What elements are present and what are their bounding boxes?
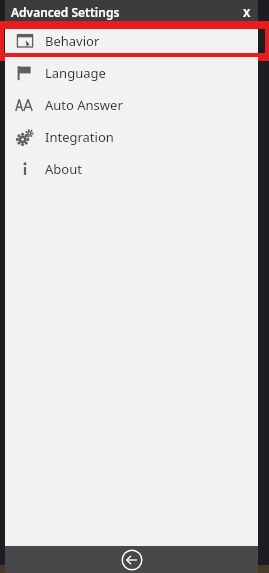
- staticText: Language: [45, 64, 106, 82]
- button[interactable]: Behavior: [5, 25, 258, 57]
- button[interactable]: Integration: [5, 121, 258, 153]
- staticText: X: [243, 5, 251, 20]
- button[interactable]: About: [5, 153, 258, 185]
- button[interactable]: Close: [236, 1, 258, 23]
- staticText: Behavior: [45, 32, 100, 50]
- staticText: Auto Answer: [45, 96, 123, 114]
- button[interactable]: Back: [119, 547, 145, 573]
- staticText: About: [45, 160, 82, 178]
- button[interactable]: Language: [5, 57, 258, 89]
- staticText: Advanced Settings: [11, 4, 120, 20]
- staticText: Integration: [45, 128, 114, 146]
- button[interactable]: Auto Answer: [5, 89, 258, 121]
